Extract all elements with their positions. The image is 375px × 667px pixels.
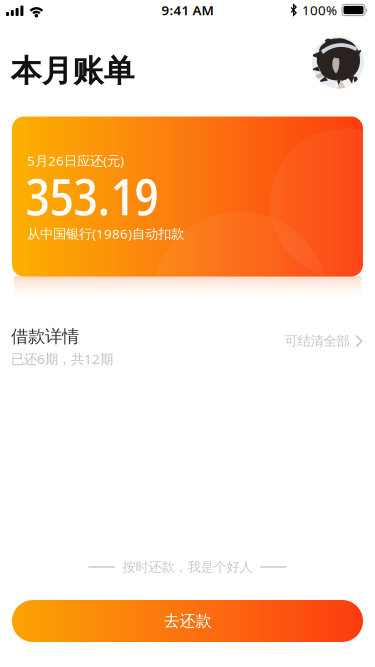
button[interactable]: 可结清全部 [284, 330, 363, 352]
staticText: 9:41 AM [161, 1, 213, 19]
staticText: 去还款 [163, 611, 211, 631]
staticText: 按时还款，我是个好人 [122, 559, 252, 575]
staticText: 5月26日应还(元) [27, 152, 124, 169]
staticText: 从中国银行(1986)自动扣款 [27, 225, 184, 242]
button[interactable]: 个人中心 [312, 36, 364, 88]
staticText: 353.19 [25, 161, 158, 230]
staticText: 借款详情 [11, 326, 79, 347]
staticText: 本月账单 [11, 52, 135, 90]
staticText: 可结清全部 [284, 333, 349, 349]
staticText: 100% [302, 1, 337, 19]
staticText: 已还6期，共12期 [11, 350, 113, 368]
button[interactable]: 去还款 [12, 600, 363, 642]
